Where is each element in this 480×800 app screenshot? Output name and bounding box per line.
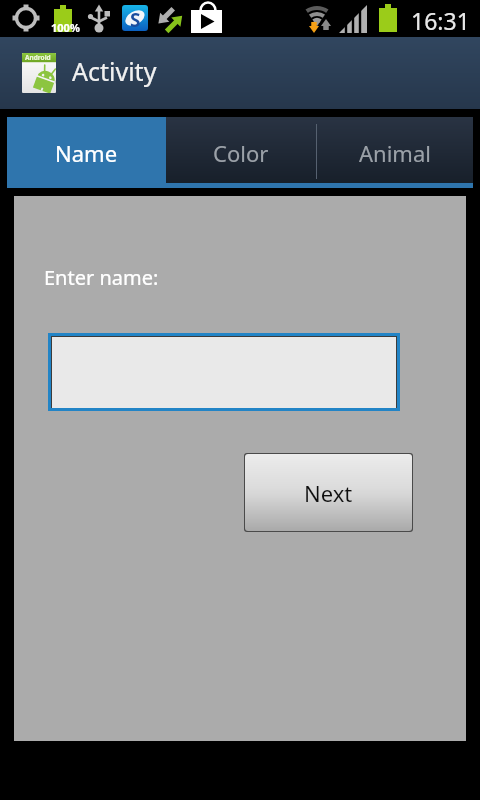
staticText: Next — [304, 478, 353, 508]
staticText: S — [130, 7, 141, 33]
button[interactable]: Color — [166, 117, 316, 188]
staticText: Name — [55, 138, 118, 168]
staticText: Android — [25, 53, 51, 62]
staticText: Animal — [359, 138, 431, 168]
staticText: 100% — [51, 20, 80, 35]
staticText: 16:31 — [411, 5, 470, 36]
staticText: Color — [213, 138, 269, 168]
button[interactable]: App icon, navigate home — [0, 37, 480, 109]
other: App icon, navigate home — [22, 53, 56, 93]
button[interactable]: Name — [7, 117, 166, 188]
staticText: Activity — [72, 54, 157, 88]
button[interactable]: Next — [245, 454, 412, 531]
staticText: Enter name: — [44, 264, 159, 291]
button[interactable]: Animal — [316, 117, 473, 188]
